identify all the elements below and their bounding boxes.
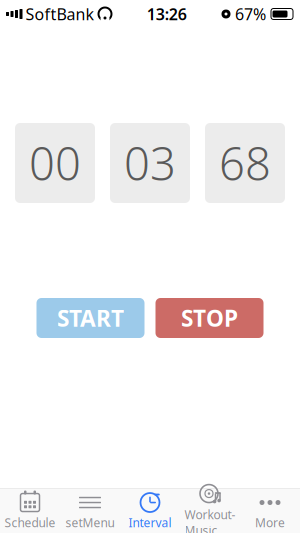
button[interactable]: STOP [155,298,263,338]
staticText: STOP [181,303,238,333]
staticText: 67% [235,3,266,25]
staticText: 00 [29,133,81,193]
button[interactable]: START [36,298,144,338]
staticText: 13:26 [147,3,187,25]
staticText: SoftBank [25,3,94,25]
staticText: START [57,303,124,333]
button[interactable]: setMenu [60,489,120,533]
staticText: 03 [124,133,176,193]
button[interactable]: More [240,489,300,533]
staticText: Interval [128,514,171,530]
button[interactable]: Schedule [0,489,60,533]
staticText: More [255,514,285,530]
button[interactable]: WorkoutMusic [180,489,240,533]
staticText: setMenu [65,514,114,530]
button[interactable]: Interval [120,489,180,533]
staticText: Schedule [4,514,55,530]
staticText: 68 [219,133,271,193]
staticText: WorkoutMusic [184,507,235,533]
